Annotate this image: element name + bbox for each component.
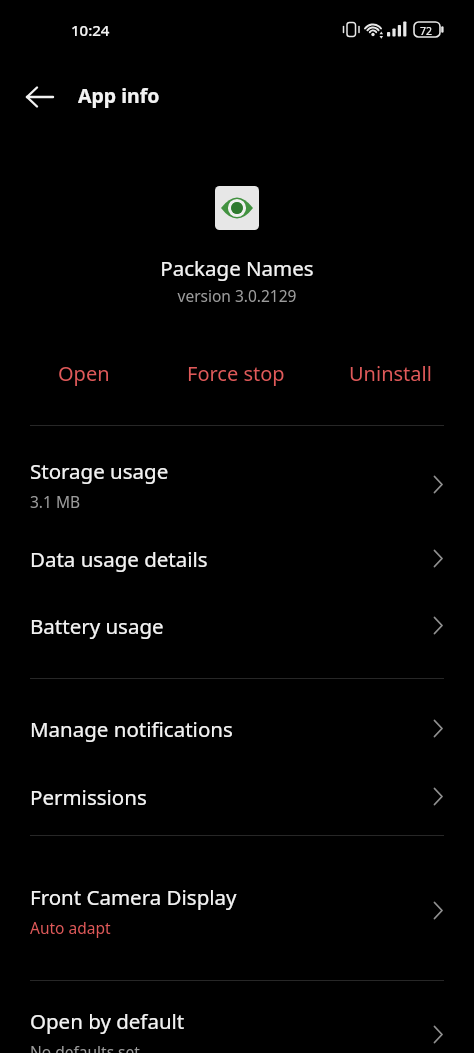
staticText: Package Names <box>0 254 474 282</box>
button[interactable] <box>16 73 64 121</box>
staticText: Storage usage <box>30 457 169 485</box>
button[interactable]: Battery usage <box>0 592 474 659</box>
staticText: Battery usage <box>30 612 164 640</box>
staticText: 72 <box>420 24 433 38</box>
staticText: Open by default <box>30 1007 185 1035</box>
button[interactable]: Manage notifications <box>0 695 474 762</box>
staticText: Manage notifications <box>30 715 233 743</box>
staticText: App info <box>78 82 160 109</box>
button[interactable]: Data usage details <box>0 525 474 592</box>
button[interactable]: Front Camera Display <box>0 864 474 956</box>
staticText: 3.1 MB <box>30 491 81 512</box>
staticText: Force stop <box>187 360 285 387</box>
staticText: Uninstall <box>349 360 432 387</box>
staticText: No defaults set <box>30 1041 140 1053</box>
button[interactable]: Open <box>9 352 159 394</box>
staticText: Open <box>58 360 110 387</box>
button[interactable]: Permissions <box>0 763 474 830</box>
staticText: Permissions <box>30 783 147 811</box>
staticText: Auto adapt <box>30 917 111 938</box>
button[interactable]: Force stop <box>161 352 311 394</box>
button[interactable]: Storage usage <box>0 438 474 530</box>
staticText: version 3.0.2129 <box>0 285 474 306</box>
button[interactable]: Open by default <box>0 988 474 1053</box>
staticText: Front Camera Display <box>30 883 237 911</box>
button[interactable]: Uninstall <box>315 352 465 394</box>
staticText: 10:24 <box>71 20 110 40</box>
staticText: Data usage details <box>30 545 208 573</box>
